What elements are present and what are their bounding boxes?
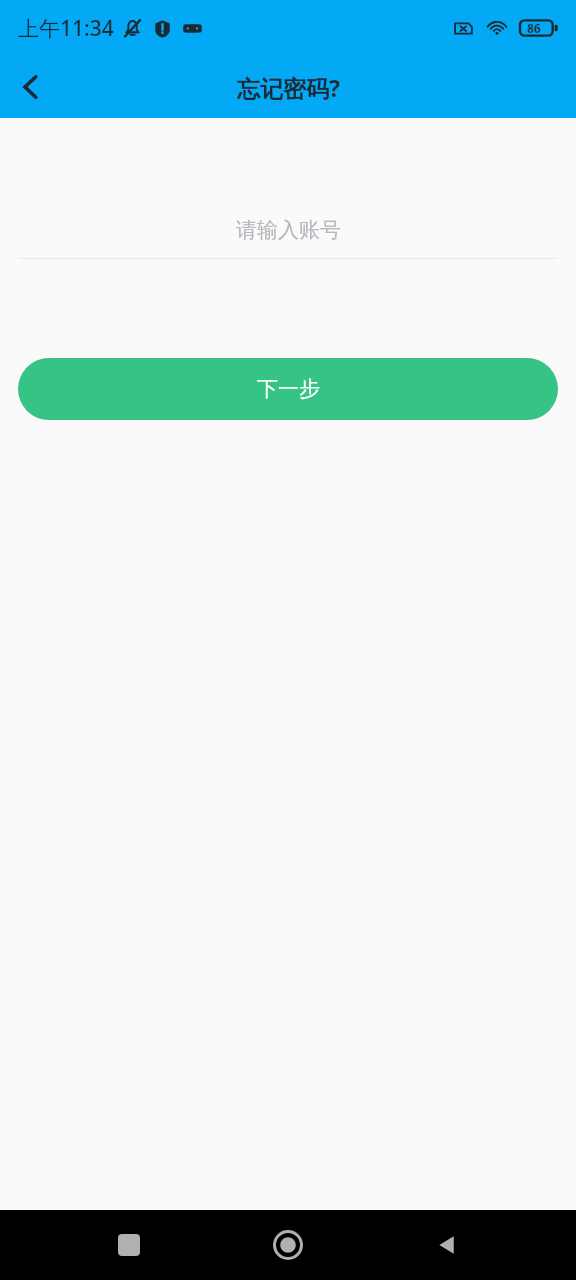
staticText: 86 (527, 20, 541, 36)
button[interactable]: Back (417, 1215, 477, 1275)
button[interactable]: Recents (99, 1215, 159, 1275)
staticText: 上午11:34 (18, 14, 114, 43)
button[interactable]: 下一步 (18, 358, 558, 420)
button[interactable]: Home (258, 1215, 318, 1275)
button[interactable]: Back (0, 56, 62, 118)
staticText: 请输入账号 (236, 217, 341, 243)
staticText: 下一步 (257, 376, 320, 402)
staticText: 忘记密码? (237, 72, 340, 103)
button[interactable]: 请输入账号 (18, 202, 558, 258)
